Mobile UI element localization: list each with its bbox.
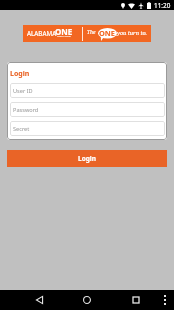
- button[interactable]: Back: [29, 290, 49, 310]
- staticText: The: [87, 29, 96, 36]
- staticText: you turn to.: [117, 29, 147, 36]
- staticText: 11:20: [154, 1, 171, 10]
- staticText: ONE: [99, 28, 115, 38]
- button[interactable]: User ID: [10, 83, 165, 98]
- button[interactable]: More options: [157, 290, 173, 310]
- staticText: Password: [13, 106, 39, 114]
- staticText: User ID: [13, 87, 33, 95]
- staticText: Secret: [13, 125, 30, 133]
- button[interactable]: Recent apps: [126, 290, 146, 310]
- staticText: Login: [10, 69, 30, 79]
- button[interactable]: Login: [7, 150, 167, 167]
- staticText: Login: [78, 154, 96, 163]
- staticText: ONE: [55, 26, 73, 37]
- staticText: ALABAMA: [27, 29, 57, 38]
- button[interactable]: Password: [10, 102, 165, 117]
- button[interactable]: Secret: [10, 121, 165, 136]
- staticText: credit union: [57, 34, 72, 37]
- button[interactable]: Home: [77, 290, 97, 310]
